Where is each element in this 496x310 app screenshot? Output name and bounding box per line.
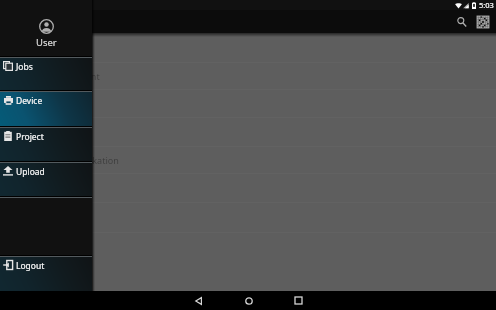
staticText: User xyxy=(36,36,57,49)
staticText: Jobs xyxy=(16,61,33,73)
button[interactable]: Home xyxy=(239,291,258,310)
staticText: Dokument xyxy=(55,70,100,82)
staticText: Logout xyxy=(16,260,45,272)
staticText: Device xyxy=(16,95,43,107)
staticText: 5:03 xyxy=(479,0,494,10)
button[interactable]: Jobs xyxy=(0,58,92,90)
staticText: Kommunikation xyxy=(51,154,119,166)
button[interactable]: Recents xyxy=(289,291,308,310)
button[interactable]: Device xyxy=(0,92,92,126)
staticText: Upload xyxy=(16,166,45,178)
button[interactable]: Upload xyxy=(0,163,92,196)
staticText: Project xyxy=(16,131,44,143)
button[interactable]: Logout xyxy=(0,257,92,291)
button[interactable]: Search xyxy=(452,12,472,32)
button[interactable]: Back xyxy=(189,291,208,310)
button[interactable]: Project xyxy=(0,128,92,161)
button[interactable]: Scan QR code xyxy=(473,12,493,32)
